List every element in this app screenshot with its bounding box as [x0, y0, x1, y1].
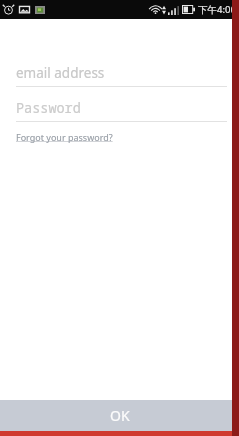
- staticText: 下午4:06: [198, 3, 236, 16]
- staticText: Forgot your password?: [16, 131, 113, 143]
- staticText: email address: [16, 64, 105, 82]
- staticText: OK: [110, 406, 130, 425]
- button[interactable]: Forgot your password?: [16, 129, 113, 145]
- button[interactable]: email address: [16, 63, 227, 82]
- staticText: Password: [16, 99, 81, 117]
- button[interactable]: Password: [16, 98, 227, 117]
- button[interactable]: OK: [0, 400, 239, 431]
